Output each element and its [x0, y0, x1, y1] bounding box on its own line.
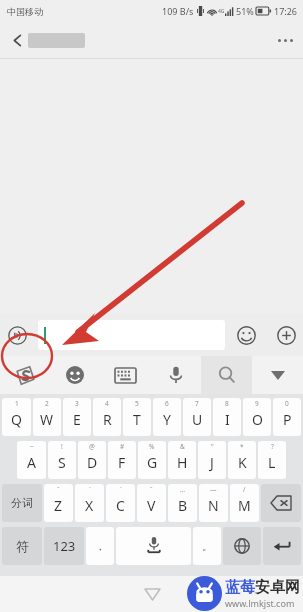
- staticText: B: [178, 496, 188, 515]
- button[interactable]: …: [168, 484, 197, 522]
- button[interactable]: [38, 320, 225, 350]
- button[interactable]: *: [228, 441, 256, 479]
- staticText: A: [27, 453, 36, 472]
- staticText: ˇ: [57, 485, 60, 494]
- button[interactable]: 123: [44, 527, 84, 565]
- staticText: ": [211, 442, 214, 451]
- button[interactable]: ，: [86, 527, 114, 565]
- staticText: Q: [11, 410, 22, 429]
- button[interactable]: ?: [258, 441, 286, 479]
- staticText: C: [116, 496, 125, 515]
- button[interactable]: Search: [201, 356, 252, 394]
- staticText: 5: [135, 399, 139, 408]
- staticText: N: [208, 496, 219, 515]
- staticText: 1: [15, 399, 19, 408]
- button[interactable]: Switch language: [223, 527, 261, 565]
- staticText: V: [147, 496, 156, 515]
- button[interactable]: &: [168, 441, 196, 479]
- button[interactable]: ˊ: [106, 484, 135, 522]
- button[interactable]: 3: [63, 398, 91, 436]
- staticText: —: [210, 485, 217, 494]
- button[interactable]: !: [48, 441, 76, 479]
- button[interactable]: 5: [123, 398, 151, 436]
- staticText: S: [58, 453, 66, 472]
- button[interactable]: 6: [153, 398, 181, 436]
- staticText: ˉ: [150, 485, 153, 494]
- staticText: 2: [45, 399, 49, 408]
- staticText: T: [133, 410, 141, 429]
- staticText: G: [147, 453, 158, 472]
- staticText: U: [192, 410, 203, 429]
- staticText: E: [73, 410, 81, 429]
- button[interactable]: Sogou input: [0, 356, 50, 394]
- staticText: 17:26: [274, 5, 298, 17]
- staticText: ?: [271, 442, 274, 451]
- staticText: W: [40, 410, 54, 429]
- staticText: X: [85, 496, 94, 515]
- staticText: *: [240, 442, 244, 451]
- button[interactable]: 1: [2, 398, 31, 436]
- staticText: ~: [30, 442, 34, 451]
- button[interactable]: Delete: [261, 484, 301, 522]
- button[interactable]: More options: [267, 22, 303, 58]
- staticText: 9: [255, 399, 259, 408]
- button[interactable]: %: [138, 441, 166, 479]
- button[interactable]: Stickers: [50, 356, 100, 394]
- button[interactable]: Voice message: [2, 320, 32, 350]
- staticText: …: [180, 485, 186, 494]
- button[interactable]: 分词: [2, 484, 42, 522]
- button[interactable]: 4: [93, 398, 121, 436]
- staticText: 7: [195, 399, 199, 408]
- button[interactable]: Back: [137, 579, 167, 609]
- button[interactable]: /: [230, 484, 259, 522]
- staticText: %: [149, 442, 155, 451]
- staticText: 3: [75, 399, 79, 408]
- staticText: F: [118, 453, 126, 472]
- staticText: 中国移动: [7, 6, 43, 17]
- button[interactable]: Voice input: [150, 356, 201, 394]
- staticText: 6: [165, 399, 169, 408]
- staticText: 安卓网: [255, 578, 300, 597]
- staticText: 51%: [236, 5, 254, 17]
- button[interactable]: Collapse: [252, 356, 303, 394]
- button[interactable]: 2: [33, 398, 61, 436]
- staticText: &: [180, 442, 185, 451]
- staticText: R: [103, 410, 112, 429]
- staticText: 8: [225, 399, 229, 408]
- staticText: www.lmkjst.com: [225, 597, 295, 609]
- button[interactable]: ": [198, 441, 226, 479]
- button[interactable]: 0: [273, 398, 301, 436]
- button[interactable]: —: [199, 484, 228, 522]
- button[interactable]: 8: [213, 398, 241, 436]
- staticText: I: [225, 410, 230, 429]
- staticText: 109 B/s: [162, 5, 194, 17]
- staticText: /: [243, 485, 246, 494]
- staticText: ˋ: [89, 485, 91, 494]
- button[interactable]: 符: [2, 527, 42, 565]
- button[interactable]: #: [108, 441, 136, 479]
- staticText: Y: [163, 410, 171, 429]
- button[interactable]: More functions: [272, 321, 300, 349]
- staticText: #: [120, 442, 125, 451]
- button[interactable]: Space: [116, 527, 191, 565]
- button[interactable]: 7: [183, 398, 211, 436]
- button[interactable]: ˇ: [44, 484, 73, 522]
- staticText: J: [210, 453, 214, 472]
- button[interactable]: ˋ: [75, 484, 104, 522]
- staticText: P: [283, 410, 292, 429]
- staticText: 0: [285, 399, 289, 408]
- button[interactable]: Emoji: [232, 321, 260, 349]
- button[interactable]: Keyboard layout: [100, 356, 150, 394]
- button[interactable]: 9: [243, 398, 271, 436]
- button[interactable]: ~: [17, 441, 46, 479]
- button[interactable]: Enter: [263, 527, 301, 565]
- staticText: 4G: [218, 8, 225, 15]
- staticText: O: [252, 410, 263, 429]
- staticText: 符: [16, 538, 29, 554]
- button[interactable]: ˉ: [137, 484, 166, 522]
- button[interactable]: Back: [0, 23, 34, 57]
- button[interactable]: @: [78, 441, 106, 479]
- staticText: 。: [202, 540, 212, 553]
- button[interactable]: 。: [193, 527, 221, 565]
